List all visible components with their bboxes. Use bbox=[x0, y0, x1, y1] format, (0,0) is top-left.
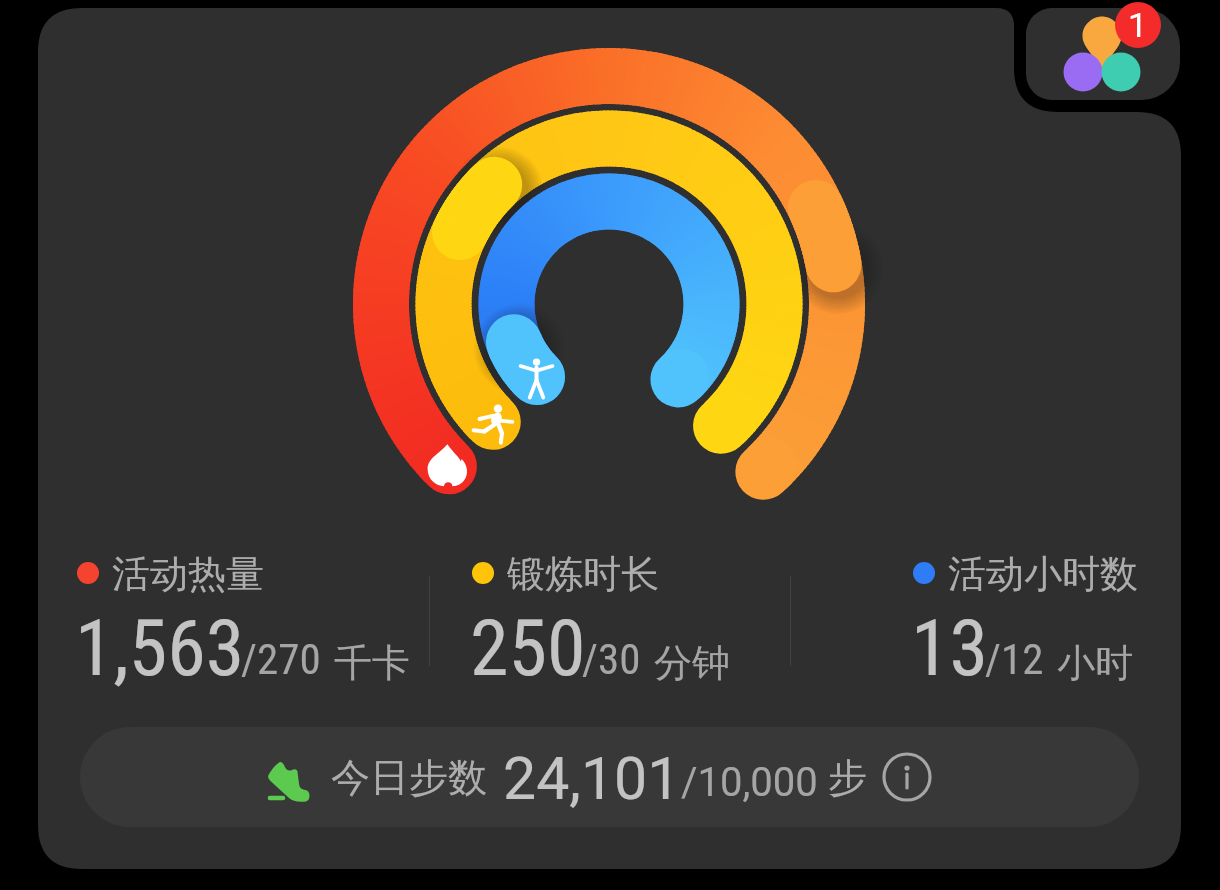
staticText: /270 bbox=[241, 634, 321, 684]
staticText: 步 bbox=[828, 753, 867, 802]
staticText: 活动小时数 bbox=[948, 550, 1138, 596]
staticText: /30 bbox=[582, 634, 641, 684]
other: Info bbox=[883, 753, 931, 801]
staticText: 千卡 bbox=[334, 639, 410, 687]
staticText: 活动热量 bbox=[112, 550, 264, 596]
staticText: 1 bbox=[1128, 5, 1148, 45]
button[interactable]: 活动热量 bbox=[77, 550, 412, 687]
staticText: /12 bbox=[985, 634, 1044, 684]
other: 1 notification bbox=[1115, 2, 1161, 48]
staticText: 小时 bbox=[1057, 639, 1133, 687]
staticText: /10,000 bbox=[681, 759, 818, 806]
staticText: 24,101 bbox=[503, 744, 681, 813]
staticText: 1,563 bbox=[75, 603, 245, 694]
staticText: 13 bbox=[911, 603, 989, 694]
button[interactable]: 今日步数 bbox=[80, 727, 1139, 827]
staticText: 250 bbox=[470, 603, 586, 694]
staticText: 锻炼时长 bbox=[507, 550, 659, 596]
button[interactable]: 锻炼时长 bbox=[472, 550, 732, 687]
button[interactable]: 活动小时数 bbox=[913, 550, 1138, 687]
button[interactable]: Apps bbox=[1026, 8, 1180, 100]
staticText: 今日步数 bbox=[331, 753, 487, 802]
staticText: 分钟 bbox=[654, 639, 730, 687]
